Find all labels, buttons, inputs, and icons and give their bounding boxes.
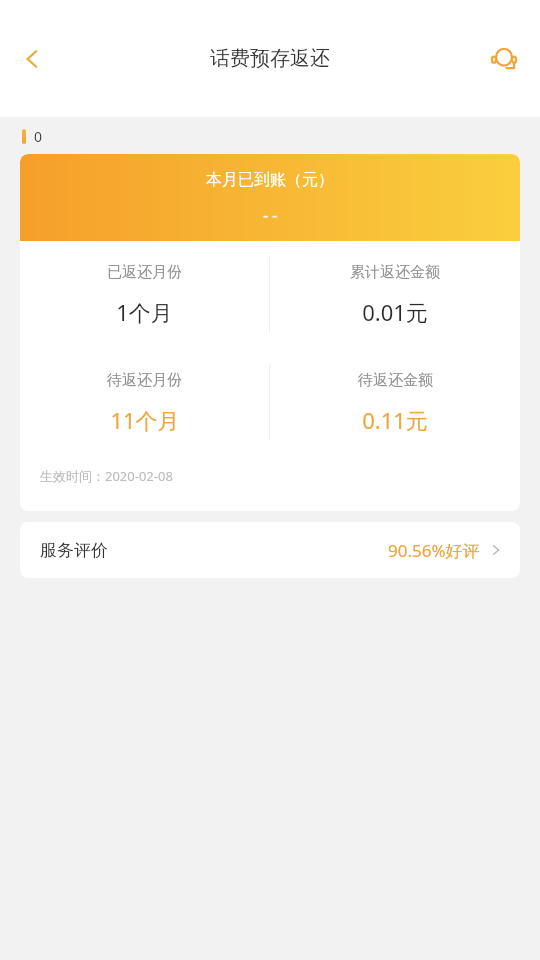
staticText: 11个月 [110, 405, 180, 435]
staticText: 本月已到账（元） [206, 170, 334, 190]
staticText: 90.56%好评 [388, 539, 480, 562]
staticText: 服务评价 [40, 540, 108, 561]
staticText: 累计返还金额 [350, 263, 440, 282]
staticText: 已返还月份 [107, 263, 182, 282]
staticText: 话费预存返还 [210, 46, 330, 71]
staticText: 0 [34, 127, 43, 146]
staticText: 0.11元 [362, 405, 428, 435]
staticText: 生效时间：2020-02-08 [40, 467, 173, 485]
staticText: 待返还月份 [107, 371, 182, 390]
button[interactable]: Back [6, 33, 58, 85]
button[interactable]: 服务评价 [20, 522, 520, 578]
staticText: 1个月 [116, 297, 173, 327]
button[interactable]: Customer service [478, 33, 530, 85]
staticText: 0.01元 [362, 297, 428, 327]
staticText: - - [263, 204, 278, 226]
staticText: 待返还金额 [358, 371, 433, 390]
